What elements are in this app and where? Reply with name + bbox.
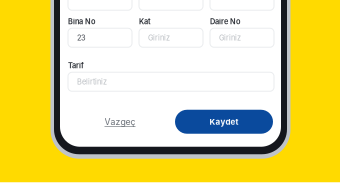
staticText: Giriniz: [219, 33, 241, 42]
staticText: Kaydet: [209, 117, 238, 127]
staticText: 23: [77, 33, 86, 42]
staticText: Giriniz: [148, 33, 170, 42]
staticText: Belirtiniz: [77, 77, 107, 86]
staticText: Daire No: [210, 17, 240, 26]
staticText: Bina No: [68, 17, 95, 26]
staticText: Tarif: [68, 61, 84, 70]
button[interactable]: Vazgeç: [93, 110, 147, 134]
staticText: Kat: [139, 17, 151, 26]
staticText: Vazgeç: [104, 116, 135, 127]
button[interactable]: Kaydet: [175, 110, 273, 134]
